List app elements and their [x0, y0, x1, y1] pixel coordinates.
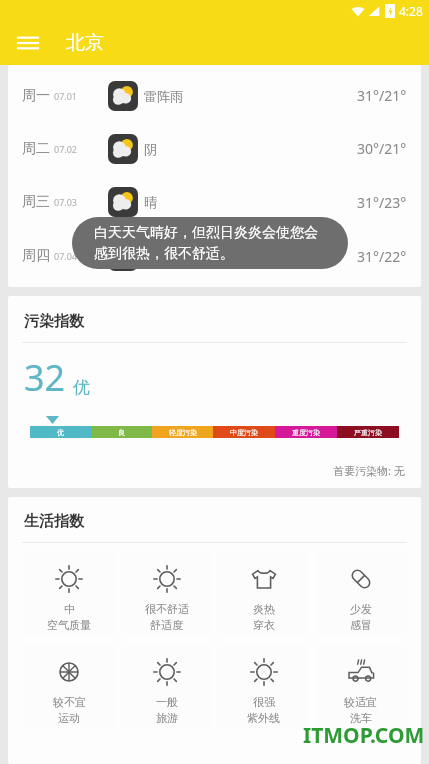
staticText: 运动 [58, 711, 80, 725]
button[interactable]: 周二 [8, 122, 421, 175]
staticText: 晴 [144, 194, 157, 210]
staticText: 周三 [22, 193, 50, 211]
staticText: 07.01 [54, 90, 78, 102]
button[interactable]: 周三 [8, 175, 421, 229]
staticText: 感冒 [350, 618, 372, 632]
staticText: 中度污染 [230, 428, 258, 437]
staticText: 轻度污染 [169, 428, 197, 437]
staticText: 31°/22° [357, 247, 407, 266]
staticText: 洗车 [350, 711, 372, 725]
button[interactable]: 较不宜 [23, 645, 115, 730]
staticText: 07.04 [54, 250, 78, 262]
staticText: 穿衣 [253, 618, 275, 632]
staticText: 旅游 [156, 711, 178, 725]
button[interactable]: 一般 [121, 645, 212, 730]
staticText: 较不宜 [53, 695, 86, 709]
staticText: 雷阵雨 [144, 88, 183, 104]
button[interactable]: 很不舒适 [121, 552, 212, 637]
staticText: 重度污染 [292, 428, 320, 437]
staticText: 很不舒适 [145, 602, 189, 616]
staticText: 31°/21° [357, 86, 407, 105]
staticText: 很强 [253, 695, 275, 709]
staticText: 舒适度 [150, 618, 183, 632]
staticText: 32 [24, 353, 66, 402]
button[interactable]: Menu [8, 23, 48, 63]
staticText: 07.03 [54, 196, 78, 208]
staticText: 空气质量 [47, 618, 91, 632]
staticText: 周四 [22, 247, 50, 265]
button[interactable]: 少发 [315, 552, 406, 637]
staticText: 一般 [156, 695, 178, 709]
button[interactable]: 炎热 [218, 552, 309, 637]
button[interactable]: 白天天气晴好，但烈日炎炎会使您会 感到很热，很不舒适。 [72, 217, 348, 269]
staticText: 4:28 [399, 3, 423, 19]
staticText: 较适宜 [344, 695, 377, 709]
button[interactable]: 很强 [218, 645, 309, 730]
button[interactable]: 周一 [8, 69, 421, 122]
button[interactable]: 周四 [8, 229, 421, 283]
staticText: 07.02 [54, 143, 78, 155]
staticText: 30°/21° [357, 139, 407, 158]
staticText: 优 [73, 377, 90, 398]
button[interactable]: 中 [23, 552, 115, 637]
staticText: 污染指数 [24, 312, 84, 331]
staticText: 紫外线 [247, 711, 280, 725]
staticText: 31°/23° [357, 193, 407, 212]
staticText: 少发 [350, 602, 372, 616]
staticText: ITMOP.COM [303, 721, 425, 750]
staticText: 优 [57, 428, 64, 437]
staticText: 北京 [66, 31, 104, 55]
button[interactable]: 较适宜 [315, 645, 406, 730]
staticText: 生活指数 [24, 512, 84, 531]
staticText: 良 [118, 428, 125, 437]
staticText: 周一 [22, 87, 50, 105]
staticText: 阴 [144, 141, 157, 157]
staticText: 白天天气晴好，但烈日炎炎会使您会 感到很热，很不舒适。 [94, 224, 318, 262]
staticText: 严重污染 [354, 428, 382, 437]
staticText: 炎热 [253, 602, 275, 616]
staticText: 多云 [144, 248, 170, 264]
staticText: 中 [64, 602, 75, 616]
staticText: 首要污染物: 无 [333, 463, 405, 478]
staticText: 周二 [22, 140, 50, 158]
